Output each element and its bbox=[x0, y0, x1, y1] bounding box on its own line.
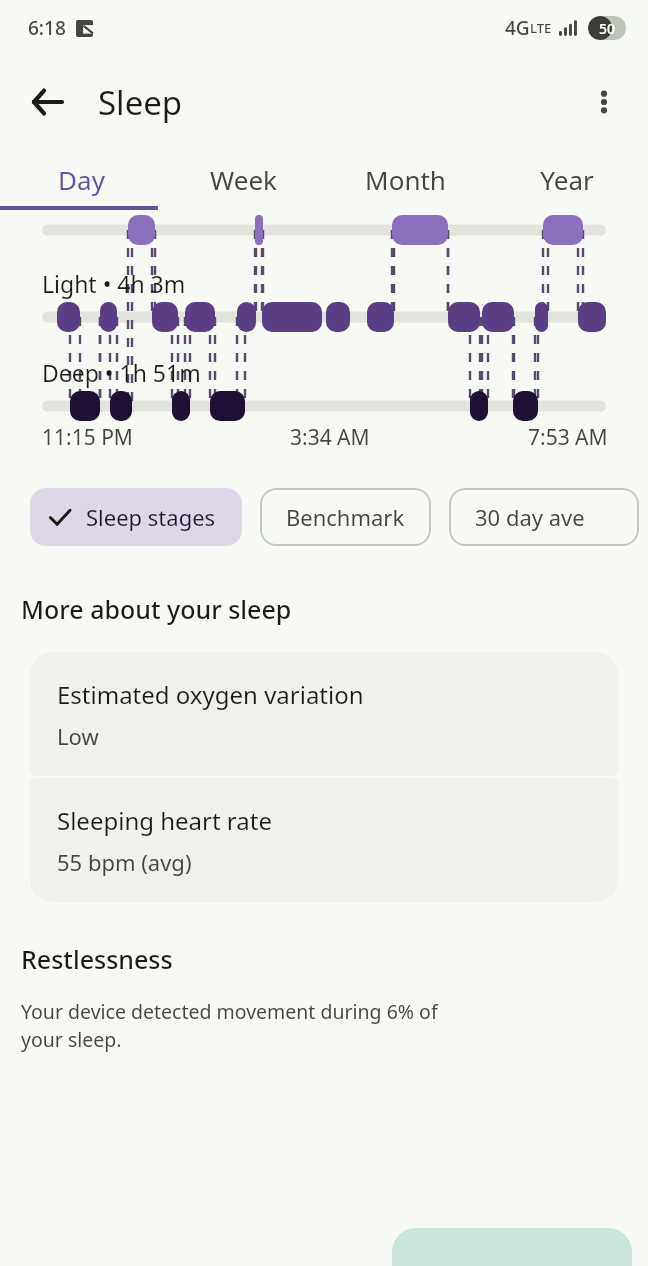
button[interactable]: Sleep stages bbox=[30, 488, 242, 546]
staticText: Restlessness bbox=[21, 942, 173, 976]
staticText: Low bbox=[57, 721, 99, 751]
staticText: 3:34 AM bbox=[290, 423, 370, 452]
button[interactable]: 30 day ave bbox=[449, 488, 639, 546]
button[interactable]: Week bbox=[162, 148, 324, 210]
button[interactable]: Estimated oxygen variation bbox=[30, 652, 618, 776]
staticText: 4G bbox=[505, 15, 530, 41]
staticText: 7:53 AM bbox=[528, 423, 608, 452]
staticText: 11:15 PM bbox=[42, 423, 133, 452]
staticText: Sleep bbox=[98, 80, 183, 125]
staticText: Light • 4h 3m bbox=[42, 268, 186, 299]
staticText: Your device detected movement during 6% … bbox=[21, 998, 438, 1053]
staticText: LTE bbox=[530, 19, 552, 37]
staticText: 6:18 bbox=[28, 15, 66, 41]
staticText: Day bbox=[58, 162, 105, 197]
staticText: 55 bpm (avg) bbox=[57, 847, 192, 877]
staticText: 30 day ave bbox=[475, 502, 585, 532]
button[interactable]: Month bbox=[324, 148, 486, 210]
staticText: Year bbox=[540, 162, 594, 197]
staticText: Benchmark bbox=[286, 502, 405, 532]
button[interactable]: Action button bbox=[392, 1228, 632, 1266]
staticText: 50 bbox=[599, 19, 616, 38]
button[interactable]: Benchmark bbox=[260, 488, 431, 546]
staticText: Sleep stages bbox=[86, 502, 216, 532]
button[interactable]: Day bbox=[0, 148, 162, 210]
button[interactable]: More options bbox=[574, 72, 634, 132]
staticText: Deep • 1h 51m bbox=[42, 357, 201, 388]
button[interactable]: Back bbox=[16, 71, 78, 133]
staticText: Week bbox=[210, 162, 277, 197]
staticText: Estimated oxygen variation bbox=[57, 678, 364, 711]
staticText: Month bbox=[365, 162, 446, 197]
button[interactable]: Year bbox=[486, 148, 648, 210]
button[interactable]: Sleeping heart rate bbox=[30, 778, 618, 902]
staticText: More about your sleep bbox=[21, 592, 292, 626]
staticText: Sleeping heart rate bbox=[57, 804, 272, 837]
